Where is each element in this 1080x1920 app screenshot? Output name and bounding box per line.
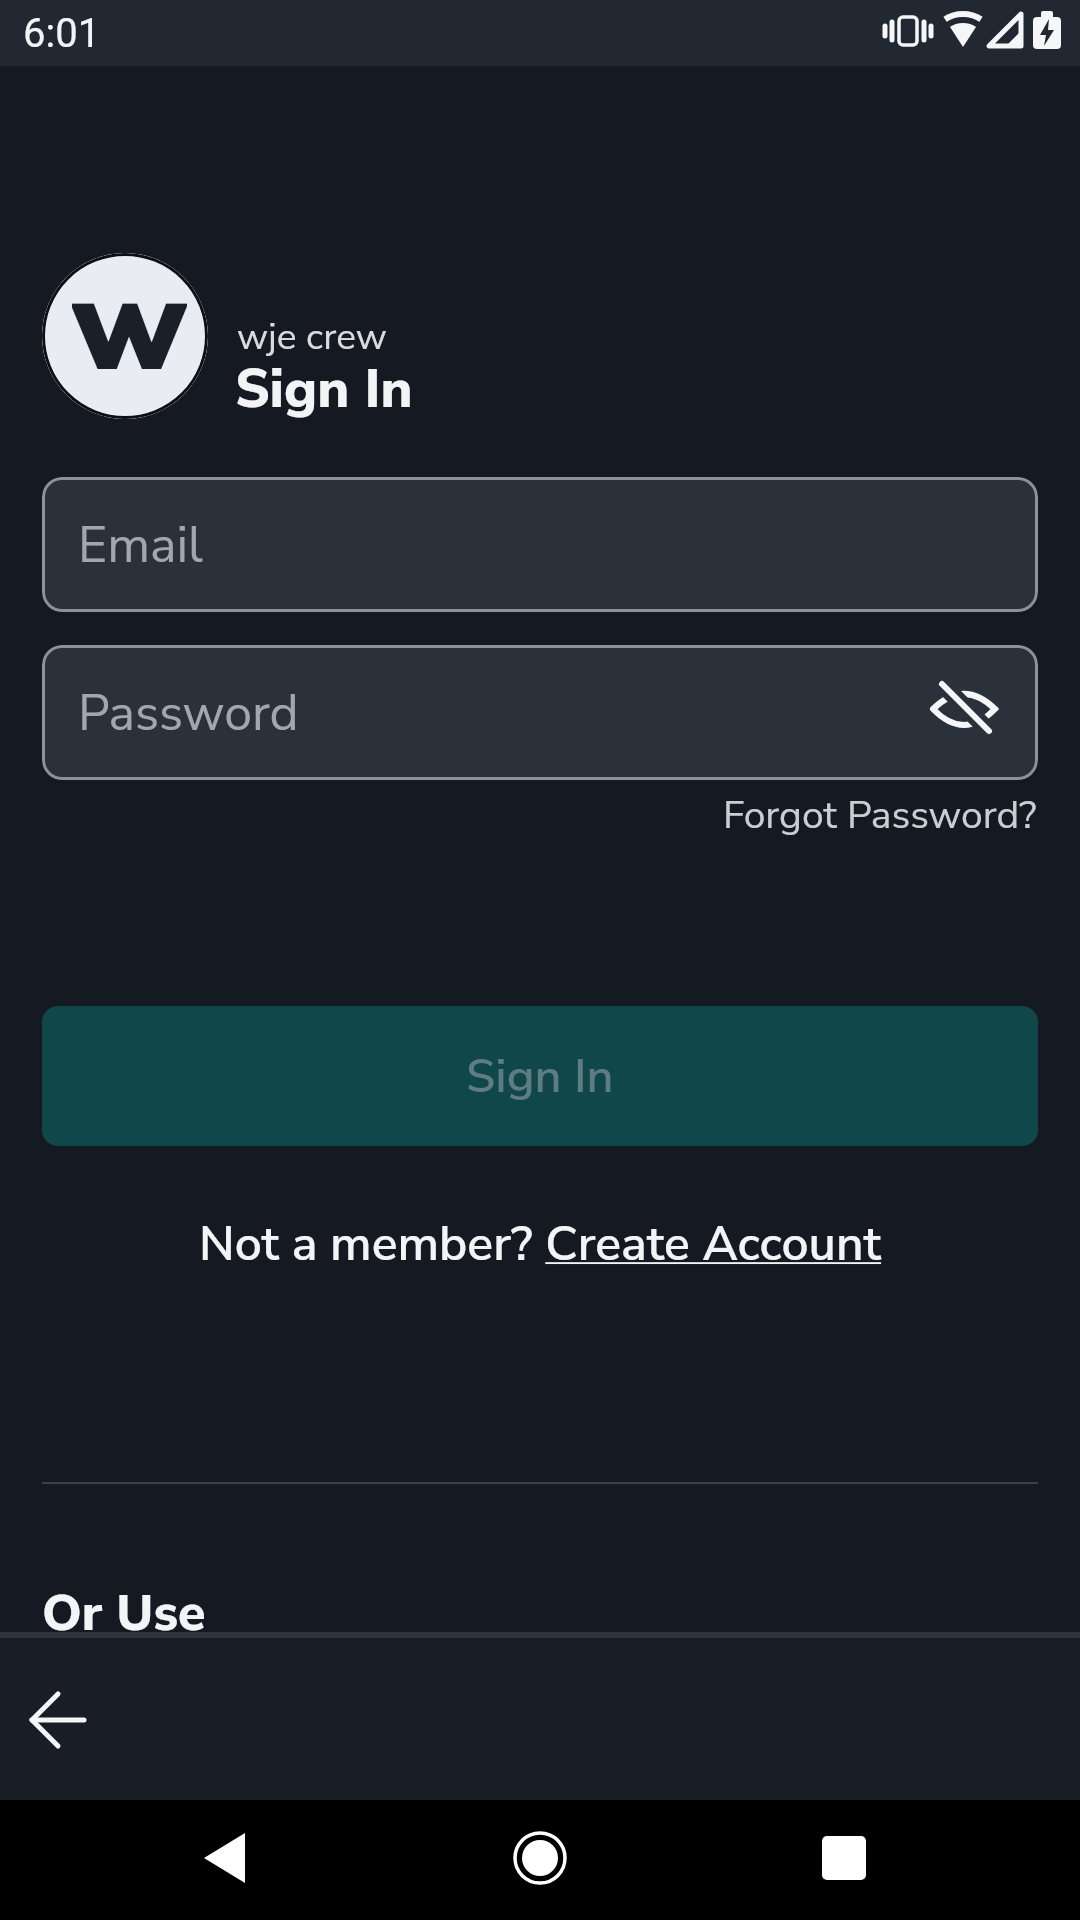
staticText: w bbox=[72, 253, 187, 402]
staticText: wje crew bbox=[237, 312, 387, 362]
staticText: Sign In bbox=[466, 1044, 614, 1108]
staticText: Sign In bbox=[235, 352, 413, 426]
staticText: 6:01 bbox=[23, 10, 101, 57]
button[interactable]: Sign In bbox=[42, 1006, 1038, 1146]
button[interactable] bbox=[495, 1820, 585, 1900]
button[interactable]: Password bbox=[42, 645, 1038, 780]
button[interactable]: Email bbox=[42, 477, 1038, 612]
button[interactable] bbox=[28, 1692, 88, 1752]
staticText: Not a member? Create Account bbox=[199, 1211, 882, 1276]
button[interactable] bbox=[180, 1820, 270, 1900]
staticText: Password bbox=[78, 679, 299, 747]
staticText: Or Use bbox=[42, 1579, 206, 1647]
staticText: Email bbox=[78, 511, 203, 579]
button[interactable] bbox=[800, 1820, 890, 1900]
button[interactable]: Not a member? Create Account bbox=[0, 1211, 1080, 1276]
button[interactable]: Forgot Password? bbox=[723, 789, 1037, 842]
